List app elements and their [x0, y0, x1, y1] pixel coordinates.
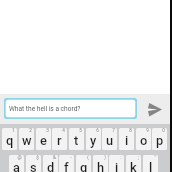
button[interactable]: ": [143, 155, 158, 172]
staticText: 7: [112, 128, 115, 133]
staticText: i: [125, 133, 129, 148]
button[interactable]: Send: [146, 101, 164, 119]
staticText: 4: [62, 128, 65, 133]
staticText: 2: [29, 128, 32, 133]
staticText: 8: [129, 128, 132, 133]
staticText: l: [149, 160, 153, 172]
button[interactable]: 3: [36, 128, 51, 150]
staticText: h: [97, 160, 105, 172]
staticText: ;: [138, 155, 139, 160]
button[interactable]: ;: [126, 155, 141, 172]
button[interactable]: 2: [19, 128, 34, 150]
staticText: o: [140, 133, 148, 148]
staticText: 0: [162, 128, 165, 133]
staticText: @: [17, 155, 22, 160]
staticText: 3: [46, 128, 49, 133]
staticText: q: [6, 133, 14, 148]
staticText: s: [30, 160, 37, 172]
staticText: w: [22, 133, 32, 148]
staticText: 5: [79, 128, 82, 133]
staticText: What the hell is a chord?: [9, 105, 81, 113]
staticText: $: [36, 155, 39, 160]
staticText: (: [87, 155, 89, 160]
button[interactable]: @: [9, 155, 24, 172]
button[interactable]: -: [59, 155, 74, 172]
button[interactable]: 7: [102, 128, 117, 150]
staticText: -: [70, 155, 72, 160]
staticText: u: [106, 133, 114, 148]
button[interactable]: 9: [136, 128, 151, 150]
button[interactable]: 0: [152, 128, 167, 150]
staticText: y: [90, 133, 97, 148]
staticText: &: [53, 155, 56, 160]
staticText: g: [80, 160, 88, 172]
button[interactable]: 6: [86, 128, 101, 150]
button[interactable]: (: [76, 155, 91, 172]
button[interactable]: 4: [52, 128, 67, 150]
staticText: ): [104, 155, 106, 160]
staticText: 9: [146, 128, 149, 133]
staticText: ": [154, 155, 156, 160]
button[interactable]: What the hell is a chord?: [4, 98, 137, 119]
staticText: r: [57, 133, 62, 148]
staticText: :: [120, 155, 122, 160]
staticText: d: [47, 160, 55, 172]
staticText: 6: [96, 128, 99, 133]
button[interactable]: 5: [69, 128, 84, 150]
staticText: 1: [12, 128, 15, 133]
staticText: a: [13, 160, 20, 172]
staticText: f: [64, 160, 69, 172]
staticText: k: [130, 160, 137, 172]
staticText: e: [40, 133, 47, 148]
button[interactable]: :: [109, 155, 124, 172]
button[interactable]: 8: [119, 128, 134, 150]
button[interactable]: $: [26, 155, 41, 172]
button[interactable]: &: [43, 155, 58, 172]
staticText: j: [115, 160, 119, 172]
button[interactable]: 1: [2, 128, 17, 150]
button[interactable]: ): [93, 155, 108, 172]
staticText: t: [74, 133, 79, 148]
staticText: p: [156, 133, 164, 148]
